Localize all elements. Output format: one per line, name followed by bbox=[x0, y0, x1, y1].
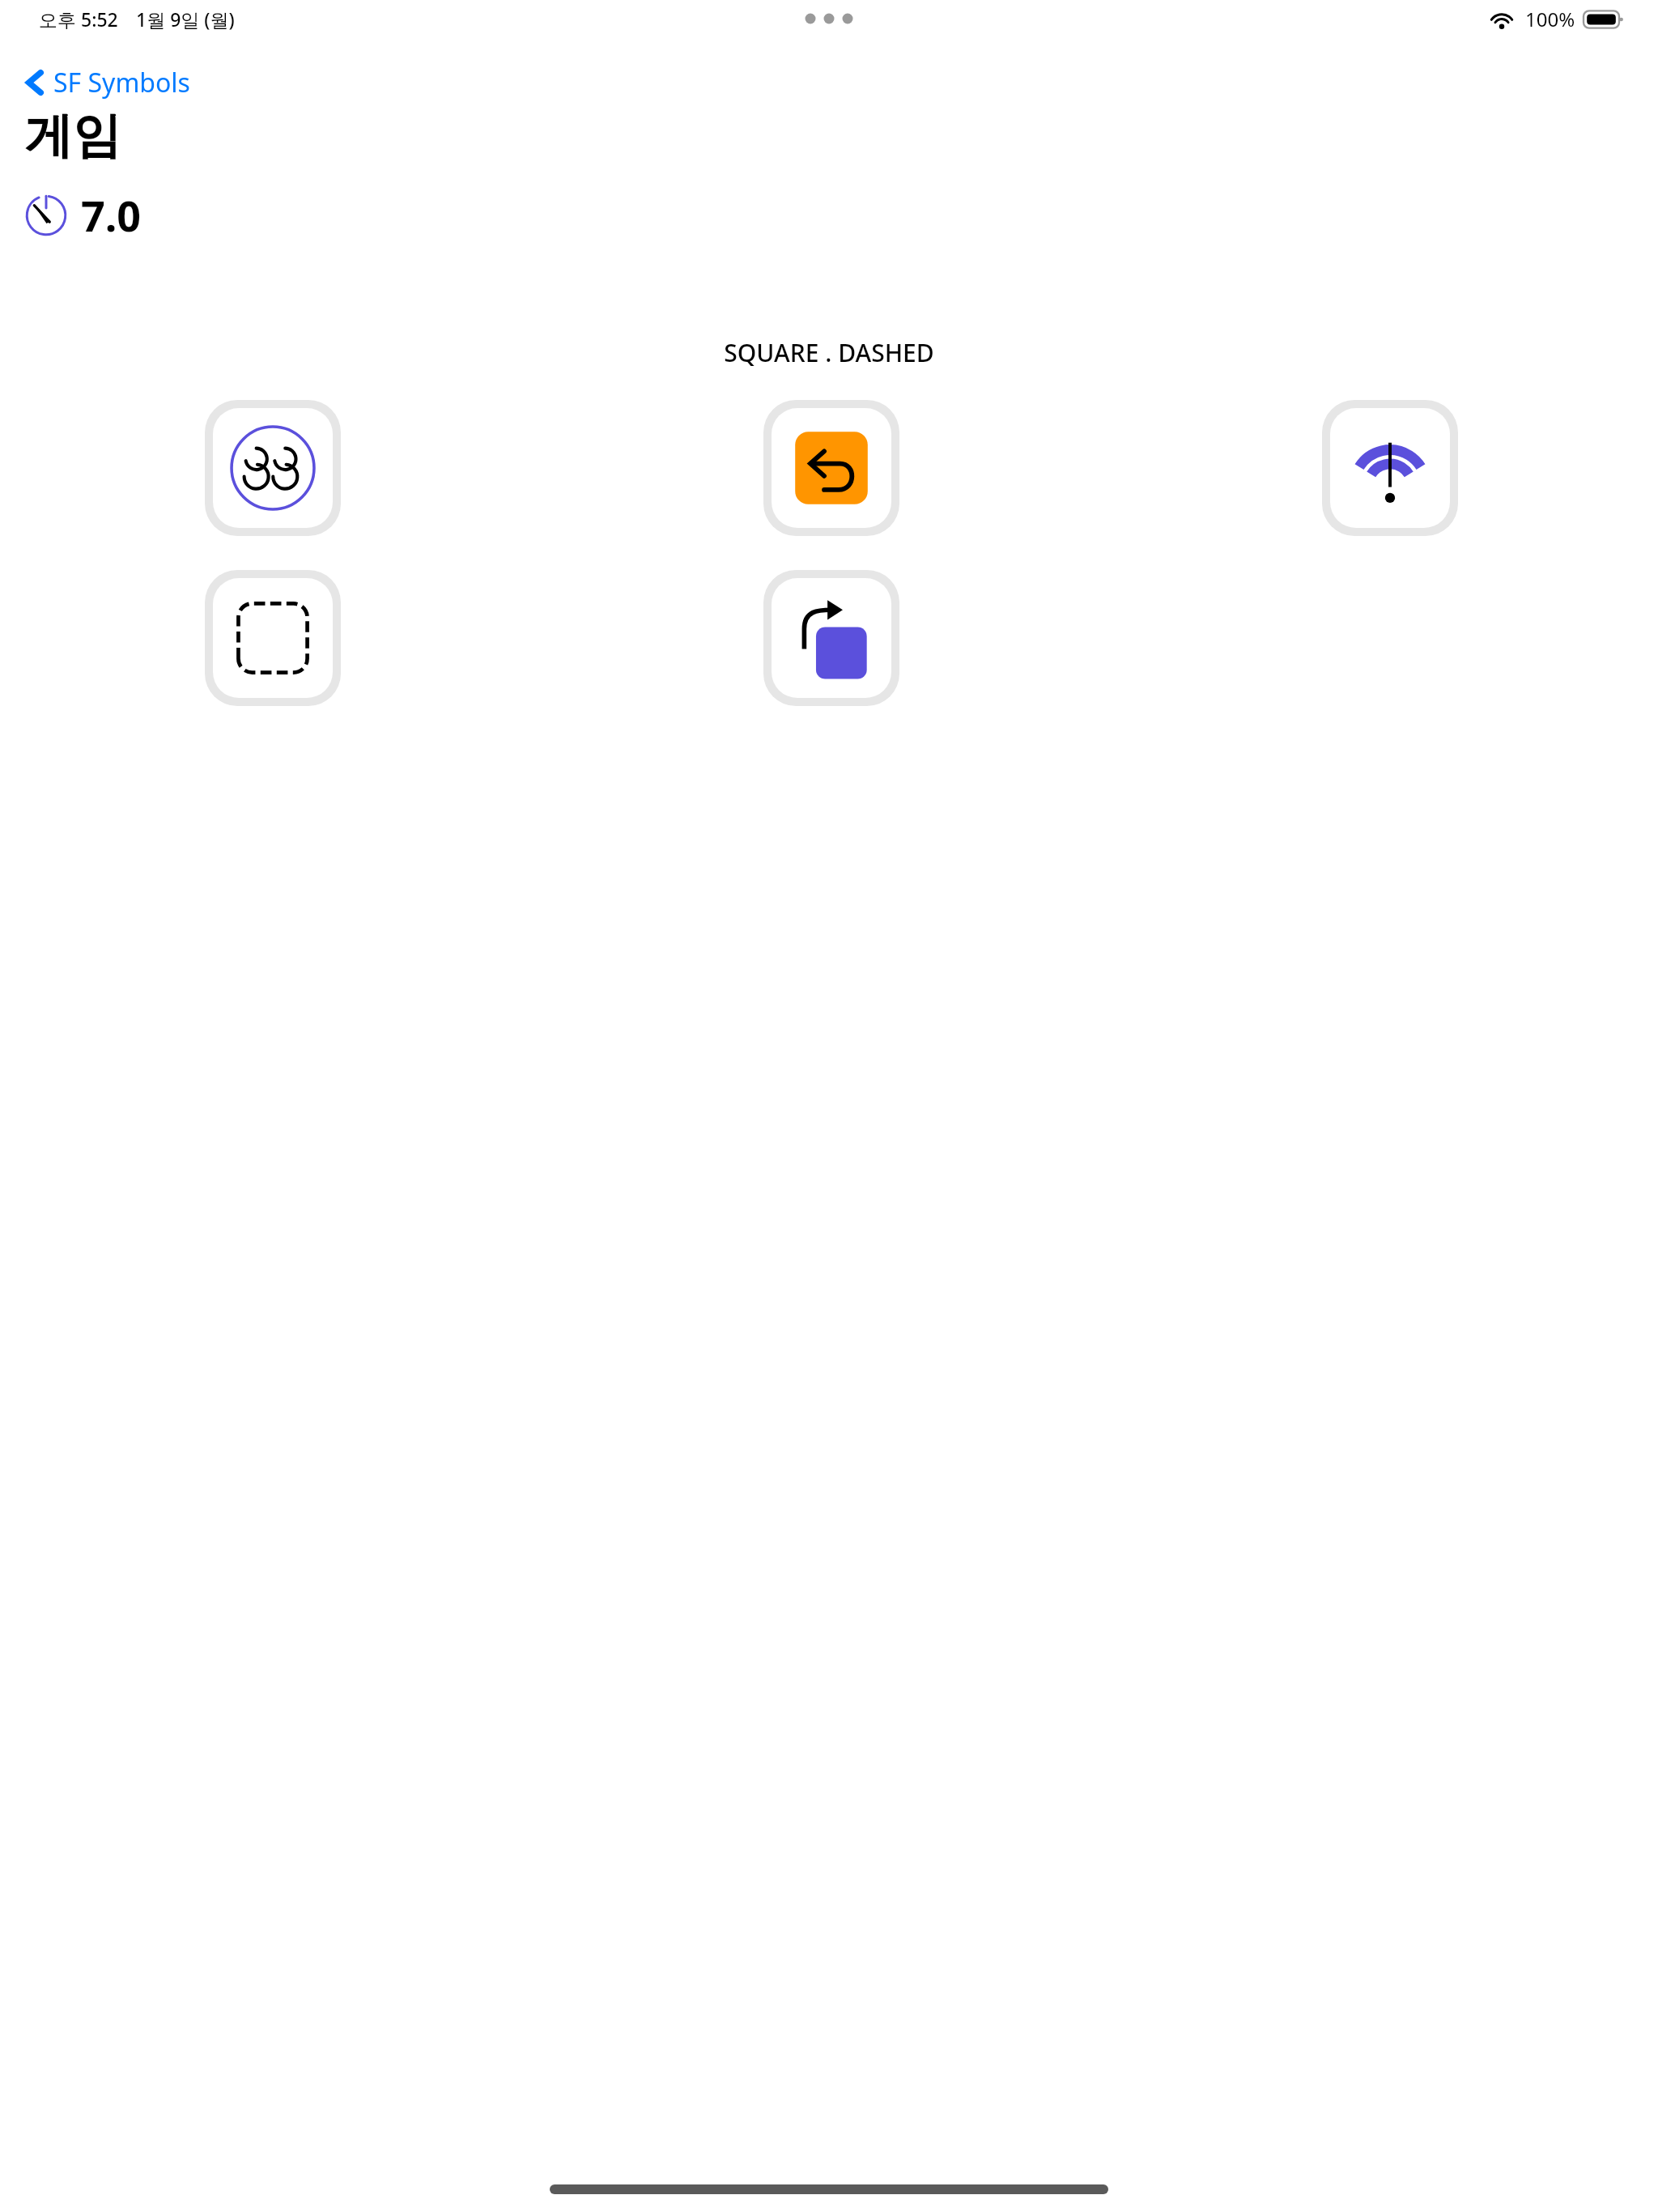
button[interactable]: Dashed square bbox=[213, 578, 333, 698]
staticText: SF Symbols bbox=[53, 65, 190, 100]
button[interactable]: Undo arrow bbox=[772, 408, 891, 528]
button[interactable]: Arrow turn up right square bbox=[772, 578, 891, 698]
button[interactable]: Number 33 circle bbox=[213, 408, 333, 528]
staticText: 게임 bbox=[24, 105, 121, 167]
staticText: 오후 5:52 bbox=[39, 6, 118, 32]
button[interactable]: Wi-Fi exclamation bbox=[1330, 408, 1450, 528]
staticText: 1월 9일 (월) bbox=[136, 6, 235, 32]
button[interactable]: SF Symbols bbox=[18, 58, 197, 107]
staticText: 7.0 bbox=[81, 186, 142, 244]
staticText: 100% bbox=[1525, 6, 1575, 32]
staticText: SQUARE . DASHED bbox=[0, 336, 1658, 369]
